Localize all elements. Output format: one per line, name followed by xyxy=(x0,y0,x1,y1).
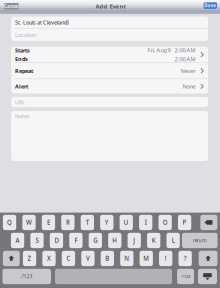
button[interactable]: P xyxy=(178,215,191,230)
staticText: return xyxy=(193,237,207,243)
button[interactable]: R xyxy=(61,215,74,230)
staticText: F xyxy=(74,236,77,245)
button[interactable]: X xyxy=(42,251,56,266)
staticText: G xyxy=(93,236,97,245)
button[interactable]: Z xyxy=(23,251,36,266)
button[interactable]: Location xyxy=(11,29,208,41)
staticText: N xyxy=(124,254,129,263)
staticText: D xyxy=(54,236,58,245)
button[interactable]: Delete xyxy=(200,215,217,230)
staticText: M xyxy=(143,254,149,263)
staticText: Z xyxy=(27,254,31,263)
staticText: Add Event xyxy=(95,2,126,10)
staticText: X xyxy=(47,254,51,263)
staticText: P xyxy=(183,218,187,227)
staticText: B xyxy=(105,254,109,263)
button[interactable]: Cancel xyxy=(4,3,19,10)
button[interactable]: E xyxy=(42,215,55,230)
button[interactable]: Q xyxy=(3,215,16,230)
staticText: ! xyxy=(165,254,167,263)
button[interactable]: N xyxy=(120,251,133,266)
staticText: Starts xyxy=(15,47,30,54)
button[interactable]: G xyxy=(89,233,102,248)
button[interactable]: F xyxy=(69,233,82,248)
staticText: L xyxy=(172,236,175,245)
staticText: U xyxy=(124,218,129,227)
button[interactable]: L xyxy=(166,233,180,248)
staticText: Y xyxy=(105,218,109,227)
staticText: URL xyxy=(15,98,25,106)
button[interactable]: I xyxy=(139,215,152,230)
staticText: H xyxy=(112,236,117,245)
button[interactable]: .?123 xyxy=(2,269,51,284)
staticText: Q xyxy=(7,218,12,227)
staticText: R xyxy=(66,218,70,227)
staticText: Never xyxy=(181,67,196,75)
staticText: V xyxy=(86,254,90,263)
button[interactable]: H xyxy=(108,233,121,248)
staticText: I xyxy=(145,218,147,227)
staticText: Repeat xyxy=(15,67,33,74)
button[interactable]: B xyxy=(101,251,114,266)
button[interactable]: Shift xyxy=(199,251,217,266)
staticText: W xyxy=(26,218,32,227)
button[interactable]: URL xyxy=(11,97,208,107)
button[interactable]: T xyxy=(81,215,94,230)
staticText: K xyxy=(152,236,156,245)
staticText: .?123 xyxy=(181,274,190,279)
staticText: A xyxy=(16,236,20,245)
button[interactable]: ! xyxy=(159,251,172,266)
button[interactable]: Done xyxy=(204,2,217,9)
staticText: St. Louis at Cleveland xyxy=(15,19,67,26)
staticText: 2:00 AM xyxy=(175,55,196,63)
staticText: T xyxy=(86,218,89,227)
button[interactable]: V xyxy=(81,251,94,266)
button[interactable]: Alert xyxy=(11,79,208,93)
staticText: E xyxy=(47,218,50,227)
button[interactable]: J xyxy=(128,233,141,248)
button[interactable]: W xyxy=(22,215,36,230)
staticText: S xyxy=(35,236,38,245)
button[interactable]: S xyxy=(30,233,44,248)
staticText: ? xyxy=(184,254,187,263)
button[interactable]: K xyxy=(147,233,160,248)
staticText: Cancel xyxy=(4,3,19,9)
button[interactable]: .?123 xyxy=(177,269,194,284)
staticText: .?123 xyxy=(21,273,33,279)
staticText: 2:00 AM xyxy=(175,46,196,54)
staticText: Fri, Aug 9 xyxy=(147,46,170,54)
staticText: Location xyxy=(15,31,36,39)
button[interactable]: Repeat xyxy=(11,63,208,79)
button[interactable]: ? xyxy=(178,251,192,266)
button[interactable]: M xyxy=(140,251,153,266)
staticText: Alert xyxy=(15,83,28,90)
button[interactable]: Notes xyxy=(11,111,208,121)
staticText: Notes xyxy=(15,112,30,120)
button[interactable]: return xyxy=(182,233,217,248)
button[interactable]: Hide Keyboard xyxy=(198,269,217,284)
staticText: Ends xyxy=(15,55,28,63)
staticText: C xyxy=(66,254,70,263)
button[interactable]: O xyxy=(158,215,172,230)
button[interactable]: Shift xyxy=(3,251,20,266)
button[interactable]: U xyxy=(120,215,133,230)
staticText: Done xyxy=(204,3,216,8)
button[interactable]: C xyxy=(62,251,75,266)
button[interactable]: A xyxy=(11,233,24,248)
button[interactable]: St. Louis at Cleveland xyxy=(11,17,208,28)
button[interactable]: Y xyxy=(100,215,113,230)
staticText: J xyxy=(133,236,135,245)
button[interactable]: Starts xyxy=(11,47,208,62)
staticText: O xyxy=(163,218,168,227)
staticText: None xyxy=(183,82,196,90)
button[interactable]: D xyxy=(50,233,63,248)
